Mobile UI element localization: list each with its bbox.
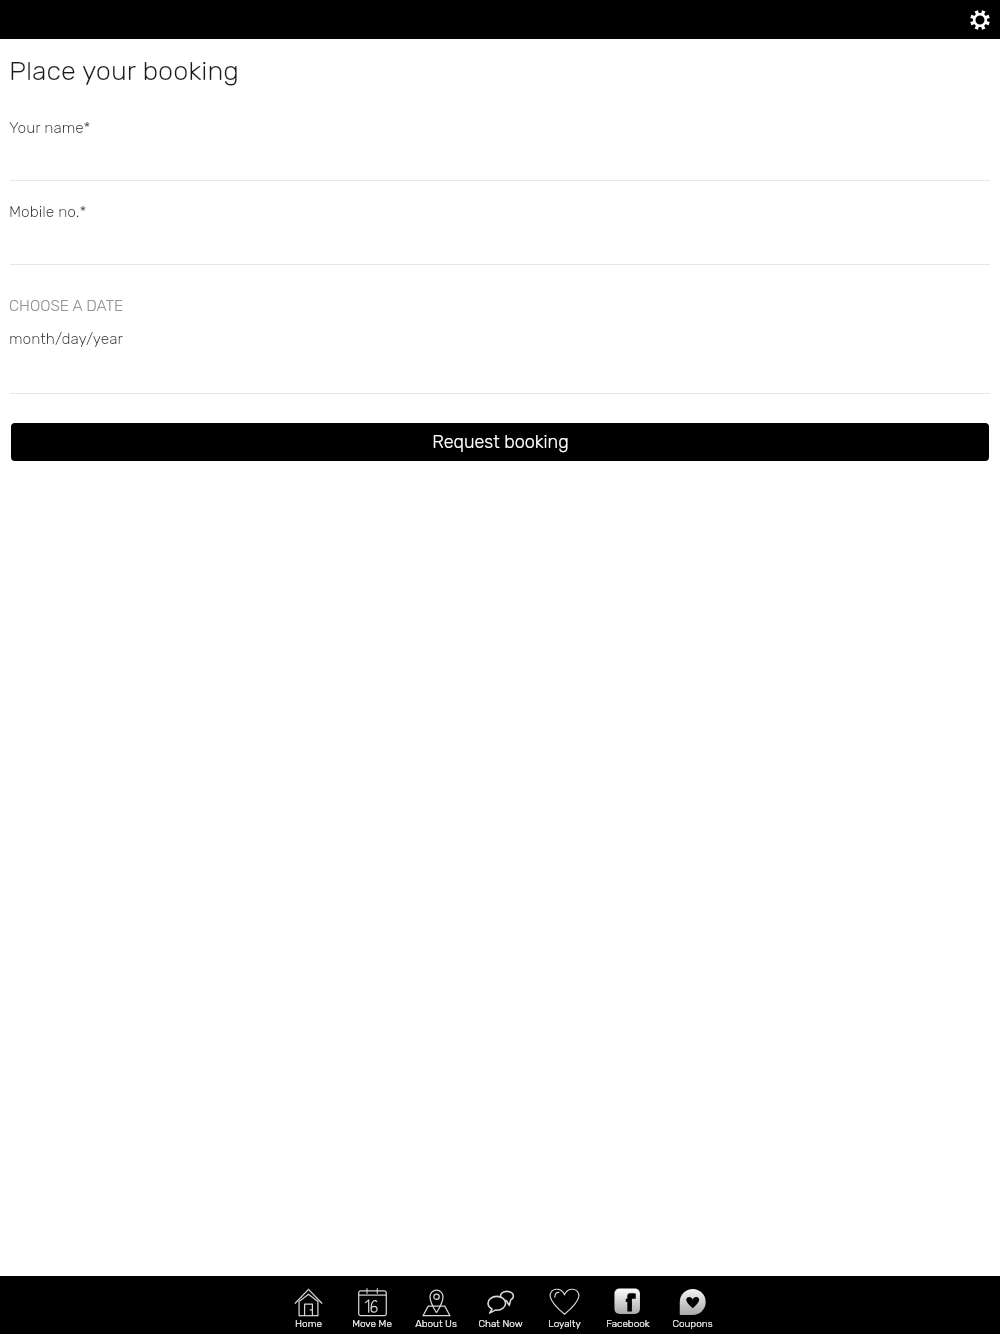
- button[interactable]: Mobile no.*: [0, 181, 1000, 264]
- button[interactable]: Home: [276, 1276, 340, 1334]
- staticText: Mobile no.*: [9, 203, 87, 221]
- button[interactable]: Your name*: [0, 97, 1000, 180]
- button[interactable]: Loyalty: [532, 1276, 596, 1334]
- button[interactable]: About Us: [404, 1276, 468, 1334]
- staticText: Loyalty: [548, 1318, 581, 1330]
- staticText: Coupons: [672, 1318, 713, 1330]
- staticText: Home: [295, 1318, 322, 1330]
- staticText: Request booking: [432, 431, 569, 452]
- staticText: Facebook: [606, 1318, 650, 1330]
- button[interactable]: Request booking: [11, 423, 989, 461]
- button[interactable]: Move Me: [340, 1276, 404, 1334]
- button[interactable]: Facebook: [596, 1276, 660, 1334]
- button[interactable]: Chat Now: [468, 1276, 532, 1334]
- staticText: About Us: [415, 1318, 457, 1330]
- button[interactable]: Coupons: [660, 1276, 724, 1334]
- button[interactable]: CHOOSE A DATE: [0, 265, 1000, 393]
- staticText: Your name*: [9, 119, 91, 137]
- button[interactable]: Settings: [965, 5, 994, 34]
- staticText: Chat Now: [478, 1318, 523, 1330]
- staticText: Move Me: [352, 1318, 392, 1330]
- staticText: month/day/year: [9, 330, 123, 348]
- staticText: Place your booking: [9, 55, 240, 87]
- staticText: CHOOSE A DATE: [9, 297, 124, 315]
